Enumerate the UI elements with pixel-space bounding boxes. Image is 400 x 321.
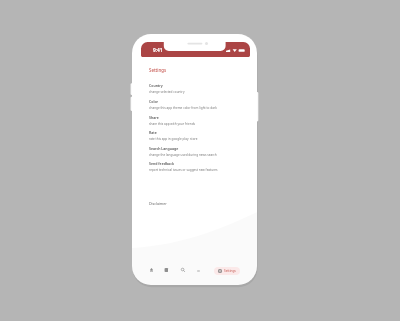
button[interactable]: Search Language [132, 146, 257, 160]
staticText: report technical issues or suggest new f… [149, 168, 218, 172]
staticText: Search Language [149, 146, 179, 151]
staticText: Settings [149, 67, 167, 73]
button[interactable]: Settings [214, 267, 240, 275]
staticText: change selected country [149, 90, 185, 94]
button[interactable]: Saved [161, 265, 171, 275]
staticText: share this app with your friends [149, 122, 196, 126]
staticText: 9:41 [153, 47, 163, 54]
staticText: Send feedback [149, 161, 174, 166]
button[interactable]: Send feedback [132, 161, 257, 175]
staticText: Country [149, 83, 163, 88]
staticText: Settings [224, 269, 236, 273]
staticText: Color [149, 99, 159, 104]
staticText: change the language used during news sea… [149, 153, 217, 157]
button[interactable]: Share [132, 115, 257, 129]
button[interactable]: Color [132, 99, 257, 113]
staticText: Disclaimer [149, 201, 167, 206]
button[interactable]: Rate [132, 130, 257, 144]
button[interactable]: Country [132, 83, 257, 97]
staticText: Share [149, 115, 159, 120]
staticText: rate this app in google play store [149, 137, 198, 141]
button[interactable]: More [193, 266, 203, 276]
button[interactable]: Search [178, 265, 188, 275]
button[interactable]: Home [146, 265, 156, 275]
staticText: change this app theme color from light t… [149, 106, 217, 110]
staticText: Rate [149, 130, 157, 135]
